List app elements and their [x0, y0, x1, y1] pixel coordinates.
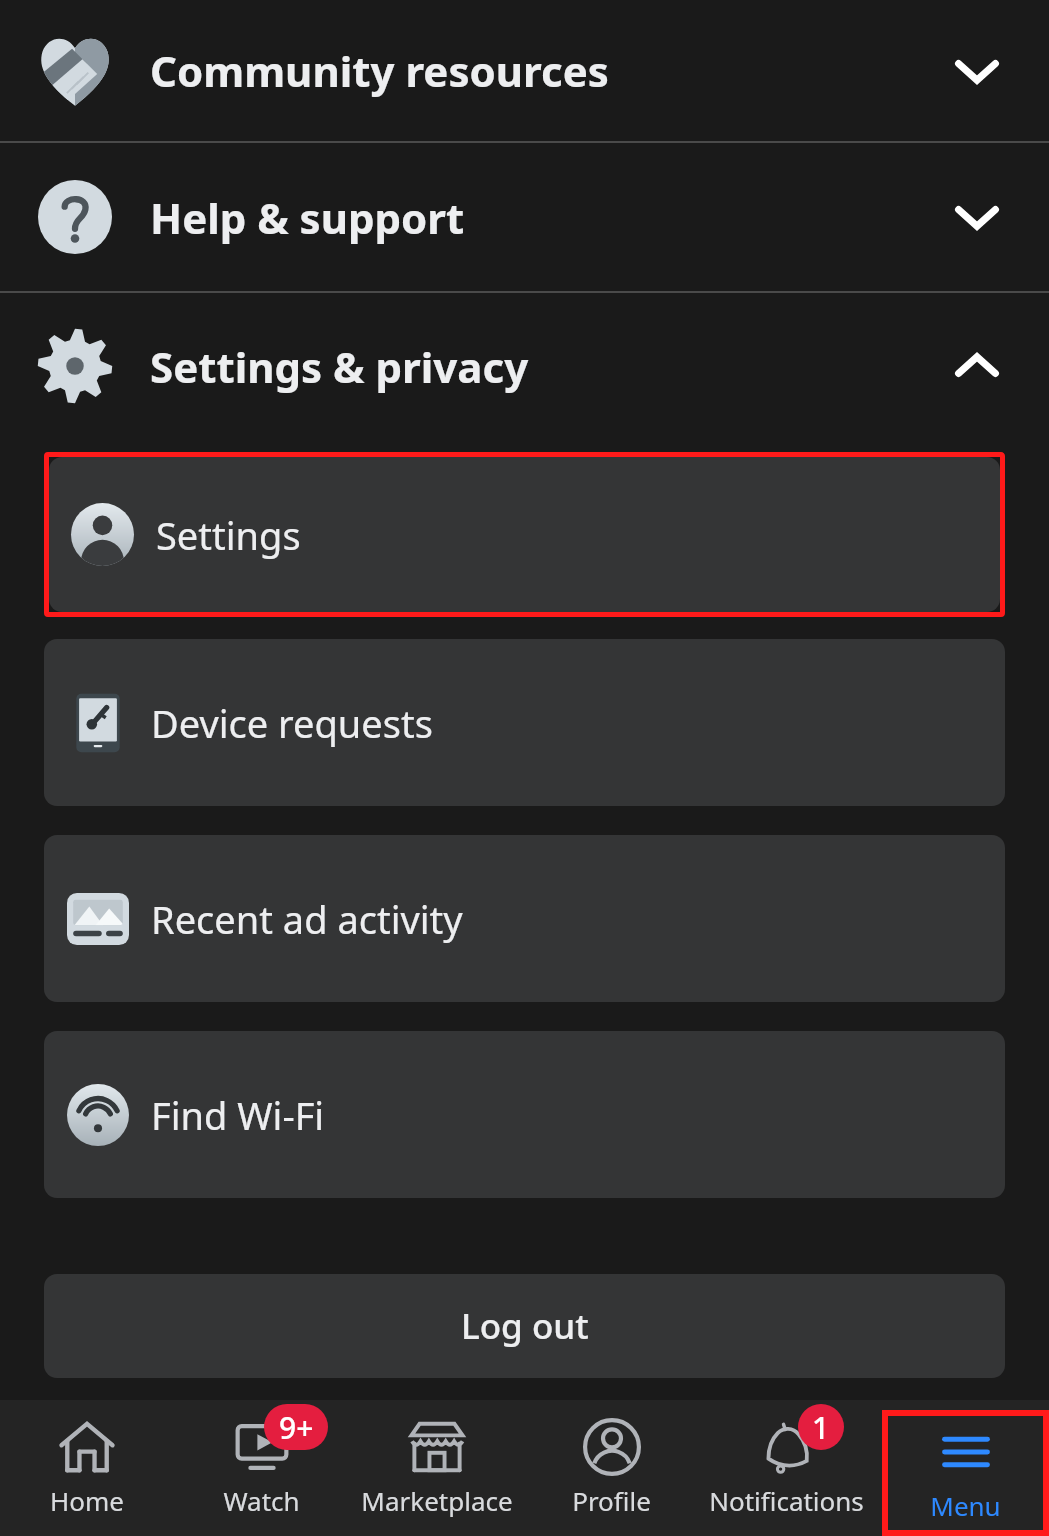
button[interactable]: Profile [524, 1400, 699, 1536]
staticText: Help & support [150, 189, 904, 246]
other: Notifications [758, 1418, 816, 1476]
staticText: Settings [156, 509, 301, 561]
button[interactable]: Menu [882, 1410, 1049, 1536]
button[interactable]: Find Wi-Fi [44, 1031, 1005, 1198]
button[interactable]: Community resources [0, 0, 1049, 141]
staticText: Watch [223, 1483, 300, 1518]
staticText: Menu [930, 1488, 1001, 1523]
button[interactable]: Notifications [699, 1400, 874, 1536]
other: Watch [233, 1418, 291, 1476]
staticText: Recent ad activity [151, 893, 463, 945]
button[interactable]: Home [0, 1400, 174, 1536]
staticText: Notifications [709, 1483, 864, 1518]
staticText: 9+ [279, 1407, 314, 1448]
staticText: Find Wi-Fi [151, 1089, 325, 1141]
other: Profile [583, 1418, 641, 1476]
staticText: Community resources [150, 42, 904, 99]
other: Menu [937, 1423, 995, 1481]
button[interactable]: Watch [174, 1400, 349, 1536]
other: Home [58, 1418, 116, 1476]
button[interactable]: Help & support [0, 143, 1049, 291]
staticText: Settings & privacy [150, 338, 904, 395]
other: Marketplace [408, 1418, 466, 1476]
button[interactable]: Recent ad activity [44, 835, 1005, 1002]
button[interactable]: Settings & privacy [0, 293, 1049, 439]
staticText: 1 [812, 1407, 830, 1448]
button[interactable]: Log out [44, 1274, 1005, 1378]
button[interactable]: Settings [49, 457, 1000, 612]
staticText: Marketplace [361, 1483, 513, 1518]
button[interactable]: Device requests [44, 639, 1005, 806]
staticText: Device requests [151, 697, 433, 749]
button[interactable]: Marketplace [349, 1400, 524, 1536]
staticText: Home [50, 1483, 124, 1518]
staticText: Log out [461, 1302, 589, 1350]
staticText: Profile [572, 1483, 651, 1518]
